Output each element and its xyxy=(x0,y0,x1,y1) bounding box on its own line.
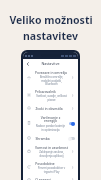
staticText: Shramba xyxy=(35,136,50,140)
button[interactable]: Shramba xyxy=(23,133,78,143)
staticText: Zvoki in obvestila xyxy=(35,106,63,110)
staticText: Posodobitve xyxy=(35,161,55,165)
staticText: Nastavitve xyxy=(41,61,60,66)
button[interactable]: Povezave in omrežja xyxy=(23,68,78,87)
staticText: Svetlost, ozadje, velikost pisave xyxy=(35,94,68,101)
staticText: Varnost in zasebnost xyxy=(35,145,68,149)
button[interactable]: O napravi xyxy=(23,175,78,180)
staticText: Zaklepanje zaslona, dovoljenja aplikacij xyxy=(35,150,68,157)
staticText: Preveri posodobitve v trgovini Play xyxy=(35,166,68,173)
button[interactable]: Izklopljeno xyxy=(68,136,75,141)
staticText: Varčevanje z energijo xyxy=(35,115,66,123)
button[interactable]: Varnost in zasebnost xyxy=(23,143,78,159)
staticText: O napravi xyxy=(35,177,51,180)
staticText: nastavitev xyxy=(23,29,78,43)
staticText: Brezžično omrežje, mobilni podatki, Blue… xyxy=(35,75,68,85)
button[interactable]: Varčevanje z energijo xyxy=(23,113,78,133)
staticText: Veliko možnosti xyxy=(9,13,93,27)
button[interactable]: Posodobitve xyxy=(23,159,78,175)
button[interactable]: Nazaj xyxy=(23,59,32,68)
button[interactable]: Prikazovalnik xyxy=(23,87,78,103)
button[interactable]: Zvoki in obvestila xyxy=(23,103,78,113)
staticText: Nadzor porabe baterije in optimizacija xyxy=(35,124,66,131)
staticText: Prikazovalnik xyxy=(35,89,56,93)
button[interactable]: Vklopljeno xyxy=(68,121,75,126)
staticText: Povezave in omrežja xyxy=(35,70,67,74)
